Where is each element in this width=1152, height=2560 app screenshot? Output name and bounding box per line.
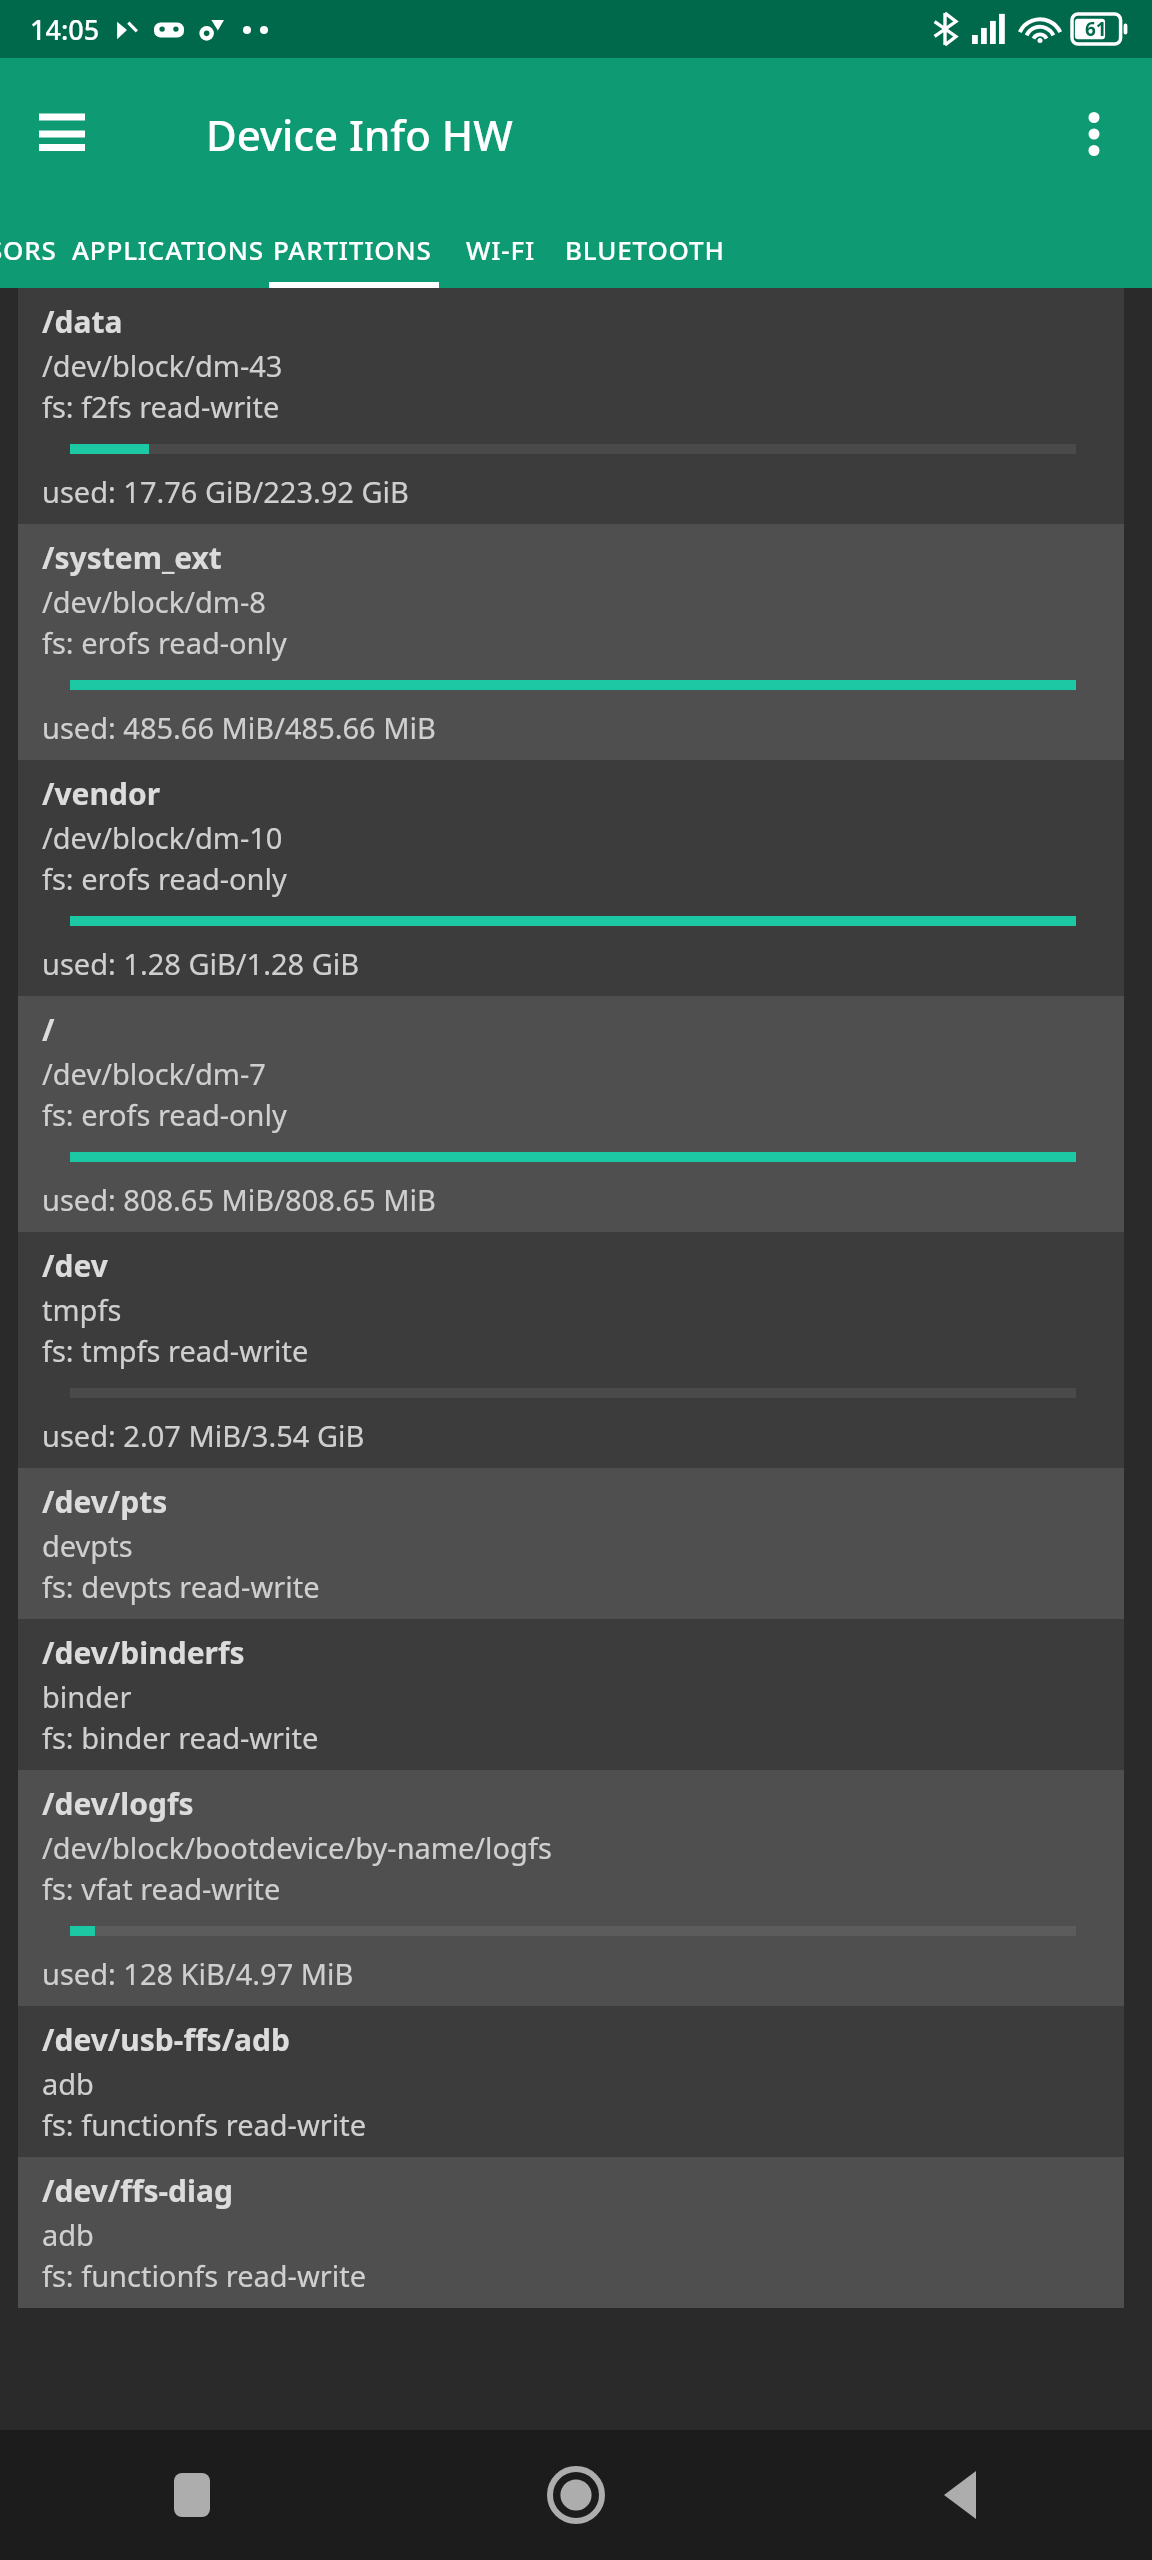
staticText: /dev/pts — [42, 1481, 168, 1522]
button[interactable]: Recent apps — [0, 2430, 384, 2560]
staticText: /dev/block/bootdevice/by-name/logfs — [42, 1828, 552, 1867]
staticText: /data — [42, 301, 123, 342]
button[interactable]: Back — [768, 2430, 1152, 2560]
button[interactable]: /system_ext — [18, 524, 1124, 760]
button[interactable]: SORS — [0, 210, 82, 288]
staticText: fs: functionfs read-write — [42, 2105, 367, 2144]
button[interactable]: More options — [1058, 98, 1130, 170]
button[interactable]: PARTITIONS — [252, 210, 452, 288]
staticText: / — [42, 1009, 55, 1050]
staticText: used: 2.07 MiB/3.54 GiB — [42, 1416, 365, 1455]
button[interactable]: /dev/ffs-diag — [18, 2157, 1124, 2308]
staticText: fs: erofs read-only — [42, 623, 287, 662]
staticText: /dev/block/dm-7 — [42, 1054, 266, 1093]
button[interactable]: / — [18, 996, 1124, 1232]
staticText: /system_ext — [42, 537, 222, 578]
staticText: 61 — [1085, 16, 1107, 42]
button[interactable]: /vendor — [18, 760, 1124, 996]
staticText: APPLICATIONS — [72, 232, 264, 267]
button[interactable]: /dev/logfs — [18, 1770, 1124, 2006]
staticText: /dev/block/dm-43 — [42, 346, 283, 385]
staticText: fs: binder read-write — [42, 1718, 319, 1757]
staticText: used: 485.66 MiB/485.66 MiB — [42, 708, 436, 747]
button[interactable]: BLUETOOTH — [550, 210, 740, 288]
staticText: binder — [42, 1677, 132, 1716]
staticText: PARTITIONS — [273, 232, 432, 267]
staticText: used: 1.28 GiB/1.28 GiB — [42, 944, 360, 983]
button[interactable]: Home — [384, 2430, 768, 2560]
button[interactable]: /dev — [18, 1232, 1124, 1468]
staticText: /dev/ffs-diag — [42, 2170, 233, 2211]
staticText: /vendor — [42, 773, 161, 814]
staticText: /dev/block/dm-10 — [42, 818, 283, 857]
staticText: /dev/binderfs — [42, 1632, 245, 1673]
staticText: /dev/block/dm-8 — [42, 582, 266, 621]
staticText: WI-FI — [466, 232, 535, 267]
button[interactable]: /dev/pts — [18, 1468, 1124, 1619]
button[interactable]: APPLICATIONS — [58, 210, 278, 288]
staticText: used: 128 KiB/4.97 MiB — [42, 1954, 354, 1993]
staticText: tmpfs — [42, 1290, 122, 1329]
staticText: 14:05 — [30, 11, 100, 48]
staticText: fs: f2fs read-write — [42, 387, 280, 426]
staticText: /dev/logfs — [42, 1783, 194, 1824]
staticText: BLUETOOTH — [565, 232, 725, 267]
staticText: /dev — [42, 1245, 108, 1286]
staticText: fs: erofs read-only — [42, 859, 287, 898]
staticText: adb — [42, 2064, 94, 2103]
staticText: fs: devpts read-write — [42, 1567, 320, 1606]
staticText: fs: tmpfs read-write — [42, 1331, 309, 1370]
staticText: fs: functionfs read-write — [42, 2256, 367, 2295]
staticText: used: 17.76 GiB/223.92 GiB — [42, 472, 409, 511]
staticText: devpts — [42, 1526, 133, 1565]
staticText: fs: vfat read-write — [42, 1869, 281, 1908]
button[interactable]: /data — [18, 288, 1124, 524]
staticText: fs: erofs read-only — [42, 1095, 287, 1134]
staticText: SORS — [0, 232, 57, 267]
staticText: used: 808.65 MiB/808.65 MiB — [42, 1180, 436, 1219]
button[interactable]: WI-FI — [440, 210, 560, 288]
staticText: Device Info HW — [206, 106, 513, 163]
button[interactable]: Open navigation menu — [26, 98, 98, 170]
staticText: adb — [42, 2215, 94, 2254]
button[interactable]: /dev/usb-ffs/adb — [18, 2006, 1124, 2157]
button[interactable]: /dev/binderfs — [18, 1619, 1124, 1770]
staticText: /dev/usb-ffs/adb — [42, 2019, 290, 2060]
